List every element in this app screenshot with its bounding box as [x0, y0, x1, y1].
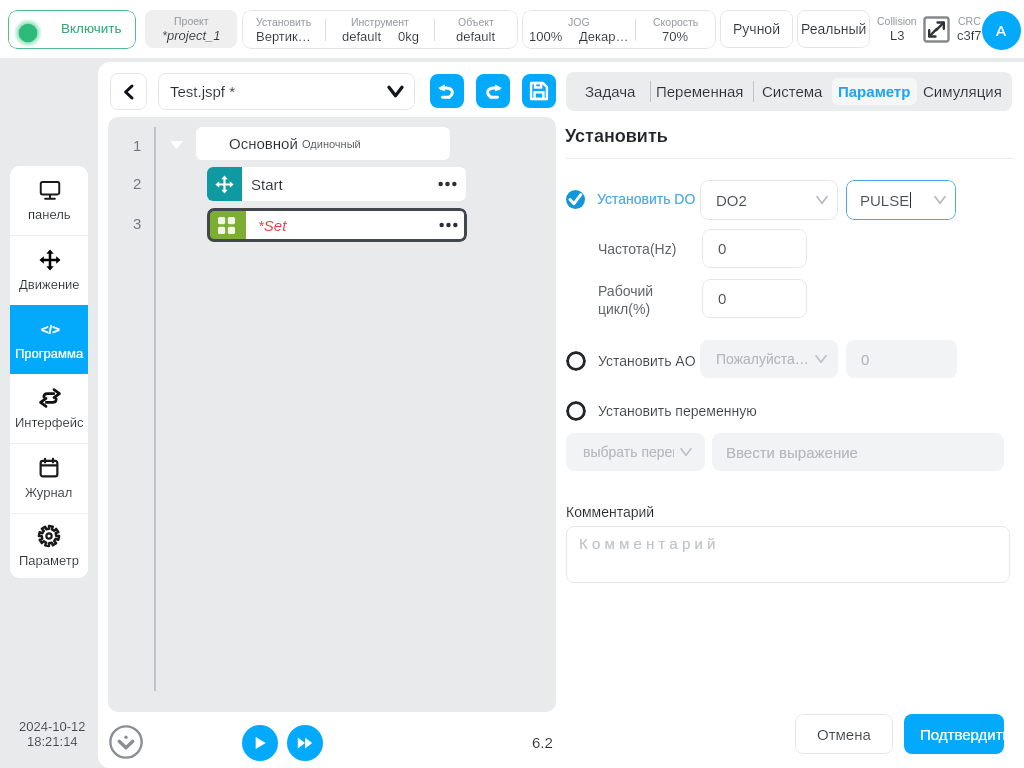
staticText: Частота(Hz) — [598, 241, 677, 257]
button[interactable]: Переменная — [652, 72, 748, 111]
staticText: Реальный — [801, 21, 867, 37]
button[interactable]: undo — [430, 74, 464, 108]
staticText: 70% — [662, 29, 689, 44]
button[interactable]: Test.jspf * — [158, 73, 415, 110]
staticText: Вертик… — [256, 29, 311, 44]
staticText: default — [456, 29, 496, 44]
button[interactable]: Пожалуйста… — [700, 340, 838, 378]
staticText: </> — [41, 322, 60, 337]
button[interactable]: Установить DO — [566, 187, 696, 211]
button[interactable]: панель — [10, 166, 88, 235]
staticText: 3 — [133, 215, 142, 232]
button[interactable]: redo — [476, 74, 510, 108]
staticText: Основной — [229, 135, 298, 152]
button[interactable]: Система — [756, 72, 828, 111]
staticText: Установить DO — [597, 191, 696, 207]
button[interactable]: Параметр — [10, 514, 88, 578]
button[interactable]: 0 — [702, 229, 807, 268]
staticText: цикл(%) — [598, 301, 651, 317]
button[interactable]: Back — [110, 73, 147, 110]
button[interactable]: CRC — [951, 10, 987, 48]
staticText: Движение — [19, 277, 80, 292]
button[interactable]: Параметр — [832, 78, 917, 105]
staticText: Collision — [877, 15, 917, 27]
staticText: Программа — [15, 346, 84, 361]
staticText: A — [996, 22, 1007, 39]
button[interactable]: Collapse — [109, 725, 143, 759]
button[interactable]: Установить AO — [566, 349, 696, 373]
staticText: Комментарий — [566, 504, 655, 520]
button[interactable]: Start — [207, 167, 466, 201]
staticText: Система — [762, 83, 823, 100]
button[interactable]: Включить — [8, 10, 136, 49]
staticText: JOG — [568, 16, 590, 28]
button[interactable]: Движение — [10, 236, 88, 305]
button[interactable]: Fullscreen — [923, 16, 950, 43]
button[interactable]: К о м м е н т а р и й — [566, 526, 1010, 583]
staticText: Ручной — [733, 21, 780, 37]
staticText: К о м м е н т а р и й — [579, 535, 716, 552]
button[interactable]: Установить — [242, 10, 518, 49]
staticText: Отмена — [817, 726, 871, 743]
button[interactable]: Журнал — [10, 444, 88, 513]
button[interactable]: Ввести выражение — [712, 433, 1004, 471]
staticText: 0 — [718, 240, 727, 257]
staticText: Задача — [585, 83, 636, 100]
button[interactable]: PULSE — [846, 180, 956, 220]
staticText: Проект — [174, 15, 209, 27]
staticText: CRC — [958, 15, 981, 27]
staticText: Ввести выражение — [726, 444, 858, 461]
staticText: Рабочий — [598, 283, 654, 299]
button[interactable]: Play — [242, 725, 278, 761]
staticText: Start — [251, 176, 283, 193]
staticText: 100% — [529, 29, 563, 44]
staticText: Установить AO — [598, 353, 696, 369]
staticText: выбрать перен — [583, 444, 674, 460]
button[interactable]: 0 — [846, 340, 957, 378]
staticText: Переменная — [656, 83, 744, 100]
staticText: 2024-10-12 — [19, 719, 86, 734]
button[interactable]: save — [522, 74, 556, 108]
staticText: панель — [28, 207, 71, 222]
staticText: 0 — [861, 351, 870, 368]
staticText: Установить — [565, 126, 668, 146]
staticText: default — [342, 29, 382, 44]
button[interactable]: Установить переменную — [566, 399, 757, 423]
button[interactable]: Симуляция — [918, 72, 1006, 111]
staticText: Объект — [458, 16, 494, 28]
staticText: Подтвердить — [920, 726, 1004, 743]
button[interactable]: Основной — [196, 127, 450, 160]
button[interactable]: Подтвердить — [904, 714, 1004, 754]
staticText: PULSE — [860, 192, 910, 209]
button[interactable]: Проект — [145, 10, 237, 48]
staticText: Установить переменную — [598, 403, 757, 419]
button[interactable]: выбрать перен — [566, 433, 705, 471]
button[interactable]: Реальный — [797, 10, 870, 48]
staticText: Журнал — [25, 485, 73, 500]
button[interactable]: Ручной — [720, 10, 793, 48]
staticText: Test.jspf * — [170, 83, 236, 100]
button[interactable]: Step — [287, 725, 323, 761]
staticText: Включить — [61, 21, 122, 36]
button[interactable]: Интерфейс — [10, 374, 88, 443]
staticText: *Set — [258, 217, 287, 234]
button[interactable]: *Set — [207, 208, 467, 242]
button[interactable]: </> — [10, 305, 88, 374]
button[interactable]: Задача — [574, 72, 646, 111]
staticText: 6.2 — [532, 734, 553, 751]
staticText: Скорость — [653, 16, 699, 28]
button[interactable]: Collision — [872, 10, 922, 48]
button[interactable]: JOG — [522, 10, 716, 49]
button[interactable]: Отмена — [795, 714, 893, 754]
staticText: Параметр — [838, 83, 911, 100]
staticText: c3f7 — [957, 28, 982, 43]
staticText: 0kg — [398, 29, 419, 44]
staticText: Симуляция — [923, 83, 1002, 100]
button[interactable]: A — [982, 11, 1021, 50]
button[interactable]: DO2 — [700, 180, 838, 220]
staticText: 0 — [718, 290, 727, 307]
button[interactable]: 0 — [702, 279, 807, 318]
staticText: Декар… — [579, 29, 629, 44]
staticText: Параметр — [19, 553, 79, 568]
staticText: DO2 — [716, 192, 747, 209]
